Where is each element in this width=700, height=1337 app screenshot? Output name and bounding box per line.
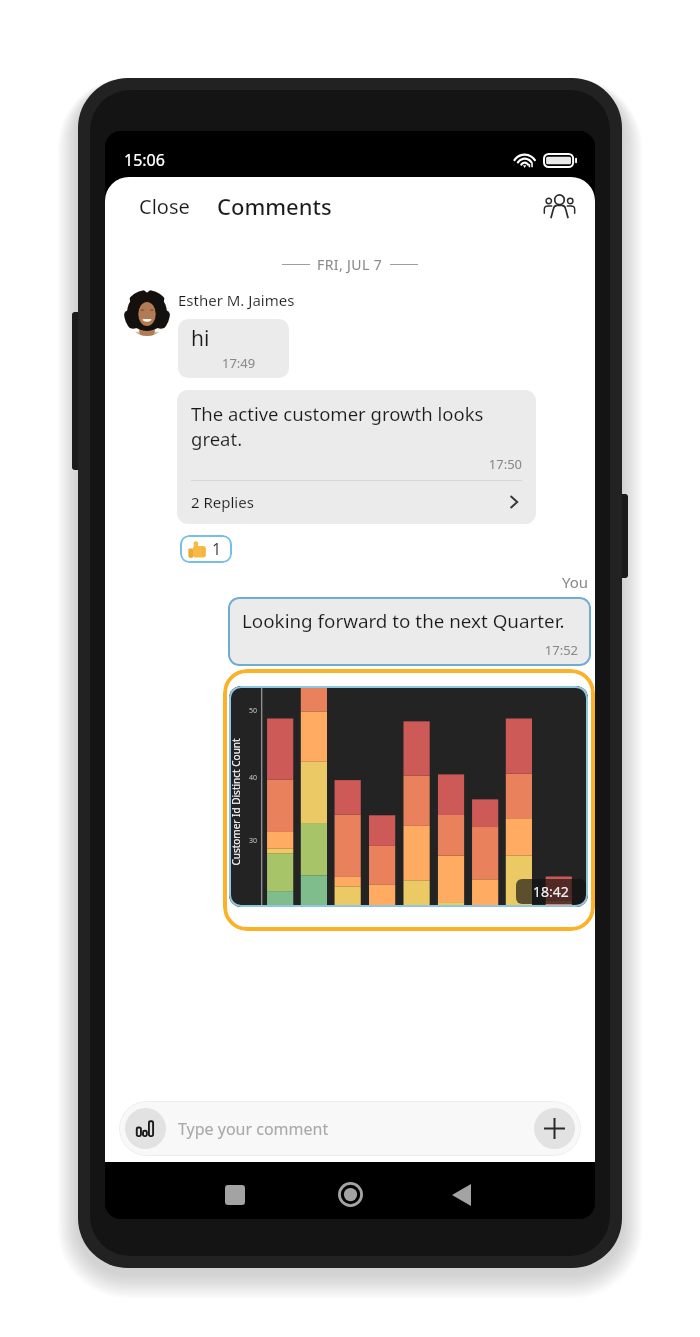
button[interactable]: Insert chart <box>119 1101 581 1156</box>
button[interactable]: Home <box>320 1166 380 1219</box>
button[interactable]: Recents <box>205 1166 265 1219</box>
button[interactable]: Looking forward to the next Quarter. <box>228 597 591 666</box>
button[interactable]: Insert chart <box>125 1108 166 1149</box>
staticText: 1 <box>212 538 222 560</box>
button[interactable]: The active customer growth looks great. <box>177 390 536 524</box>
button[interactable]: Participants <box>536 183 583 229</box>
staticText: 17:50 <box>191 455 522 473</box>
staticText: hi <box>191 324 210 353</box>
staticText: 50 <box>249 706 258 716</box>
button[interactable]: Close <box>125 184 204 229</box>
button[interactable]: Back <box>431 1166 491 1219</box>
staticText: FRI, JUL 7 <box>317 255 383 274</box>
staticText: Comments <box>217 191 332 221</box>
staticText: 40 <box>249 773 258 783</box>
staticText: Esther M. Jaimes <box>178 290 295 310</box>
staticText: 30 <box>249 836 258 846</box>
button[interactable]: Add attachment <box>534 1108 575 1149</box>
button[interactable]: Customer Id Distinct Count <box>223 669 595 931</box>
staticText: Looking forward to the next Quarter. <box>242 608 565 634</box>
button[interactable]: 2 Replies <box>191 481 522 524</box>
button[interactable]: 1 <box>180 535 232 563</box>
staticText: Type your comment <box>178 1118 329 1140</box>
staticText: 17:52 <box>242 641 578 659</box>
staticText: 18:42 <box>533 882 569 901</box>
staticText: 15:06 <box>124 149 165 171</box>
staticText: Close <box>139 193 190 220</box>
staticText: Customer Id Distinct Count <box>229 738 243 866</box>
staticText: 17:49 <box>222 354 256 372</box>
staticText: The active customer growth looks great. <box>191 401 522 452</box>
button[interactable]: hi <box>178 319 289 378</box>
staticText: You <box>105 572 588 592</box>
staticText: 2 Replies <box>191 492 254 512</box>
